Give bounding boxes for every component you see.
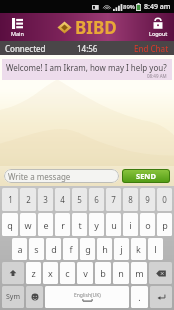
staticText: v: [83, 267, 88, 279]
button[interactable]: Space: [45, 286, 129, 308]
staticText: 08:49 AM: [147, 73, 167, 79]
staticText: 8:49 am: [144, 2, 171, 12]
staticText: p: [162, 219, 168, 231]
staticText: e: [43, 219, 49, 231]
button[interactable]: f: [63, 238, 78, 260]
button[interactable]: 1: [2, 188, 18, 211]
button[interactable]: End Chat: [129, 41, 174, 55]
button[interactable]: c: [60, 262, 75, 284]
button[interactable]: r: [55, 213, 70, 236]
button[interactable]: u: [106, 213, 121, 236]
staticText: b: [100, 267, 106, 279]
staticText: 3: [43, 194, 48, 205]
staticText: .: [138, 291, 141, 303]
staticText: q: [7, 219, 13, 231]
staticText: u: [111, 219, 117, 231]
button[interactable]: 5: [72, 188, 87, 211]
button[interactable]: x: [43, 262, 58, 284]
staticText: i: [129, 219, 132, 231]
staticText: z: [31, 267, 36, 279]
button[interactable]: a: [12, 238, 27, 260]
button[interactable]: .: [131, 286, 148, 308]
button[interactable]: 6: [89, 188, 104, 211]
button[interactable]: Shift: [2, 262, 24, 284]
button[interactable]: 8: [123, 188, 138, 211]
staticText: w: [24, 219, 32, 231]
staticText: Welcome! I am Ikram, how may I help you?: [6, 62, 167, 73]
button[interactable]: l: [148, 238, 163, 260]
button[interactable]: w: [20, 213, 36, 236]
button[interactable]: Welcome! I am Ikram, how may I help you?: [2, 59, 172, 80]
button[interactable]: Write a message: [4, 169, 119, 183]
staticText: s: [34, 243, 39, 255]
staticText: d: [51, 243, 57, 255]
button[interactable]: y: [89, 213, 104, 236]
staticText: 89%: [123, 3, 135, 11]
staticText: f: [69, 243, 73, 255]
button[interactable]: o: [140, 213, 155, 236]
button[interactable]: 0: [157, 188, 172, 211]
button[interactable]: Enter: [150, 286, 172, 308]
staticText: Write a message: [8, 171, 71, 182]
button[interactable]: p: [157, 213, 172, 236]
staticText: SEND: [136, 171, 156, 181]
staticText: j: [120, 243, 123, 255]
button[interactable]: s: [29, 238, 44, 260]
staticText: 8: [128, 194, 133, 205]
button[interactable]: 4: [55, 188, 70, 211]
button[interactable]: v: [77, 262, 93, 284]
staticText: t: [78, 219, 82, 231]
staticText: r: [61, 219, 65, 231]
staticText: l: [154, 243, 157, 255]
staticText: 9: [145, 194, 150, 205]
button[interactable]: t: [72, 213, 87, 236]
staticText: End Chat: [134, 43, 169, 54]
button[interactable]: z: [26, 262, 41, 284]
staticText: m: [135, 267, 144, 279]
button[interactable]: 2: [20, 188, 36, 211]
staticText: x: [48, 267, 53, 279]
staticText: 5: [77, 194, 82, 205]
staticText: Sym: [6, 292, 20, 302]
staticText: English(UK): [74, 292, 101, 299]
button[interactable]: SEND: [122, 169, 170, 183]
button[interactable]: Backspace: [149, 262, 172, 284]
button[interactable]: 7: [106, 188, 121, 211]
button[interactable]: g: [80, 238, 95, 260]
staticText: g: [85, 243, 91, 255]
button[interactable]: 9: [140, 188, 155, 211]
staticText: n: [118, 267, 124, 279]
staticText: Connected: [5, 43, 46, 54]
staticText: 0: [162, 194, 167, 205]
button[interactable]: Sym: [2, 286, 24, 308]
button[interactable]: b: [95, 262, 111, 284]
staticText: 4: [60, 194, 65, 205]
staticText: c: [65, 267, 70, 279]
button[interactable]: n: [113, 262, 129, 284]
staticText: BIBD: [75, 16, 117, 39]
button[interactable]: e: [38, 213, 53, 236]
button[interactable]: 3: [38, 188, 53, 211]
button[interactable]: k: [131, 238, 146, 260]
staticText: Main: [11, 30, 24, 37]
button[interactable]: Emoji: [26, 286, 43, 308]
staticText: 7: [111, 194, 116, 205]
button[interactable]: Main: [0, 13, 34, 41]
staticText: k: [136, 243, 141, 255]
button[interactable]: h: [97, 238, 112, 260]
button[interactable]: i: [123, 213, 138, 236]
staticText: 1: [8, 194, 13, 205]
staticText: o: [145, 219, 151, 231]
button[interactable]: m: [131, 262, 147, 284]
staticText: 14:56: [77, 43, 98, 54]
button[interactable]: d: [46, 238, 61, 260]
staticText: h: [102, 243, 108, 255]
button[interactable]: j: [114, 238, 129, 260]
button[interactable]: Logout: [142, 13, 174, 41]
staticText: y: [94, 219, 99, 231]
staticText: 6: [94, 194, 99, 205]
staticText: Logout: [149, 30, 168, 37]
button[interactable]: q: [2, 213, 18, 236]
staticText: a: [17, 243, 23, 255]
staticText: 2: [26, 194, 31, 205]
